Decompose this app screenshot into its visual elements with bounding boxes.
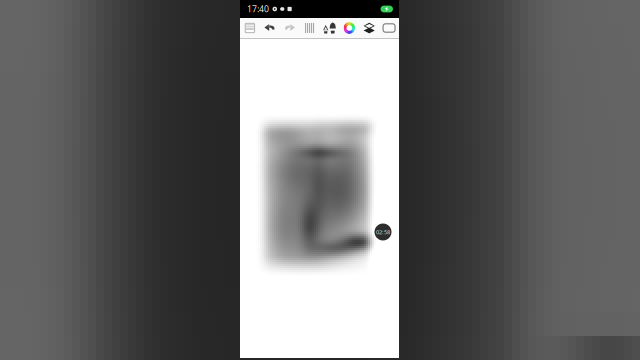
button[interactable]: Undo [260, 18, 280, 38]
button[interactable]: Colour [339, 18, 359, 38]
button[interactable]: Gallery [240, 18, 260, 38]
staticText: 02:58 [376, 228, 390, 236]
staticText: 17:40 [247, 3, 269, 15]
button[interactable]: Recording timer 02:58 [374, 223, 391, 240]
button[interactable]: Layers [359, 18, 379, 38]
button[interactable]: Redo [280, 18, 300, 38]
button[interactable]: Grid [300, 18, 319, 38]
button[interactable]: Brush [319, 18, 339, 38]
button[interactable]: Canvas [379, 18, 399, 38]
